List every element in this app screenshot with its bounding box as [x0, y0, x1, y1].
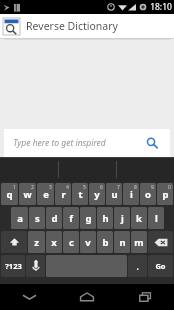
- staticText: k: [136, 212, 142, 225]
- staticText: e: [43, 188, 49, 201]
- button[interactable]: x: [46, 231, 62, 253]
- staticText: 1: [13, 184, 16, 191]
- button[interactable]: [0, 157, 174, 182]
- staticText: y: [94, 188, 100, 201]
- staticText: x: [51, 236, 57, 249]
- staticText: m: [134, 236, 144, 249]
- staticText: o: [145, 188, 151, 201]
- staticText: 0: [168, 184, 171, 191]
- button[interactable]: o: [140, 183, 156, 205]
- button[interactable]: Symbols: [1, 255, 25, 277]
- staticText: 4: [66, 184, 69, 191]
- staticText: h: [102, 212, 109, 225]
- button[interactable]: Go: [148, 255, 173, 277]
- staticText: w: [23, 188, 32, 201]
- staticText: 8: [134, 184, 137, 191]
- staticText: Type here to get inspired: [13, 137, 106, 149]
- button[interactable]: r: [55, 183, 71, 205]
- button[interactable]: p: [157, 183, 173, 205]
- button[interactable]: j: [114, 207, 130, 229]
- button[interactable]: Backspace: [148, 231, 173, 253]
- button[interactable]: c: [63, 231, 79, 253]
- button[interactable]: t: [72, 183, 88, 205]
- staticText: z: [34, 236, 39, 249]
- button[interactable]: n: [114, 231, 130, 253]
- staticText: t: [78, 188, 83, 201]
- button[interactable]: Search: [144, 135, 160, 151]
- button[interactable]: l: [148, 207, 164, 229]
- staticText: u: [111, 188, 118, 201]
- button[interactable]: f: [63, 207, 79, 229]
- button[interactable]: Period: [128, 255, 147, 277]
- button[interactable]: d: [46, 207, 62, 229]
- button[interactable]: b: [97, 231, 113, 253]
- staticText: v: [85, 236, 91, 249]
- button[interactable]: k: [131, 207, 147, 229]
- button[interactable]: e: [37, 183, 54, 205]
- staticText: 9: [151, 184, 154, 191]
- button[interactable]: w: [19, 183, 36, 205]
- staticText: d: [51, 212, 58, 225]
- button[interactable]: g: [80, 207, 96, 229]
- staticText: 2: [31, 184, 34, 191]
- button[interactable]: u: [106, 183, 122, 205]
- staticText: c: [69, 236, 74, 249]
- staticText: n: [119, 236, 126, 249]
- staticText: 7: [117, 184, 120, 191]
- button[interactable]: m: [131, 231, 147, 253]
- button[interactable]: s: [29, 207, 45, 229]
- button[interactable]: Type here to get inspired: [4, 129, 170, 157]
- staticText: p: [162, 188, 169, 201]
- staticText: Go: [155, 261, 166, 271]
- staticText: r: [61, 188, 66, 201]
- staticText: l: [155, 212, 158, 225]
- staticText: Reverse Dictionary: [26, 19, 118, 33]
- button[interactable]: h: [97, 207, 113, 229]
- staticText: 6: [100, 184, 103, 191]
- staticText: g: [85, 212, 92, 225]
- button[interactable]: Home: [58, 284, 116, 310]
- staticText: b: [102, 236, 109, 249]
- staticText: i: [130, 188, 133, 201]
- button[interactable]: Recent apps: [116, 284, 174, 310]
- staticText: ?123: [5, 261, 22, 271]
- staticText: s: [35, 212, 40, 225]
- button[interactable]: Shift: [1, 231, 27, 253]
- button[interactable]: Voice input: [26, 255, 45, 277]
- staticText: 18:10: [150, 1, 172, 13]
- staticText: f: [69, 212, 73, 225]
- button[interactable]: Reverse Dictionary: [0, 14, 174, 38]
- staticText: a: [17, 212, 23, 225]
- button[interactable]: a: [11, 207, 28, 229]
- button[interactable]: z: [28, 231, 45, 253]
- staticText: 5: [83, 184, 86, 191]
- button[interactable]: v: [80, 231, 96, 253]
- staticText: j: [121, 212, 124, 225]
- staticText: .: [136, 261, 139, 272]
- button[interactable]: Back: [0, 284, 58, 310]
- button[interactable]: y: [89, 183, 105, 205]
- button[interactable]: i: [123, 183, 139, 205]
- button[interactable]: q: [1, 183, 18, 205]
- staticText: q: [6, 188, 13, 201]
- staticText: 3: [49, 184, 52, 191]
